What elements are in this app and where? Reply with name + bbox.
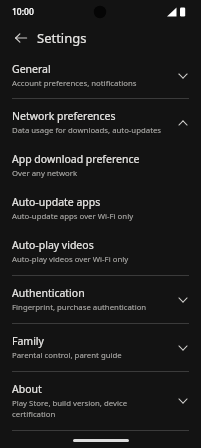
- button[interactable]: Authentication: [0, 276, 201, 323]
- staticText: Network preferences: [12, 109, 116, 123]
- staticText: Data usage for downloads, auto-updates: [12, 125, 162, 136]
- staticText: Settings: [37, 29, 87, 47]
- button[interactable]: General: [0, 60, 201, 98]
- button[interactable]: Auto-update apps: [0, 187, 201, 230]
- button[interactable]: Back: [10, 27, 32, 49]
- button[interactable]: Family: [0, 324, 201, 371]
- staticText: Auto-update apps: [12, 195, 101, 209]
- staticText: Account preferences, notifications: [12, 78, 137, 89]
- staticText: Auto-play videos: [12, 238, 94, 252]
- staticText: Auto-update apps over Wi-Fi only: [12, 211, 134, 222]
- staticText: Play Store, build version, device certif…: [12, 398, 171, 420]
- staticText: About: [12, 382, 42, 396]
- staticText: Over any network: [12, 168, 78, 179]
- staticText: App download preference: [12, 152, 140, 166]
- staticText: Parental control, parent guide: [12, 350, 122, 361]
- button[interactable]: About: [0, 372, 201, 430]
- staticText: Authentication: [12, 286, 85, 300]
- staticText: 10:00: [12, 6, 34, 18]
- staticText: Family: [12, 334, 44, 348]
- staticText: General: [12, 62, 51, 76]
- button[interactable]: Network preferences: [0, 99, 201, 144]
- staticText: Auto-play videos over Wi-Fi only: [12, 254, 129, 265]
- staticText: Fingerprint, purchase authentication: [12, 302, 147, 313]
- button[interactable]: App download preference: [0, 144, 201, 187]
- button[interactable]: Auto-play videos: [0, 230, 201, 275]
